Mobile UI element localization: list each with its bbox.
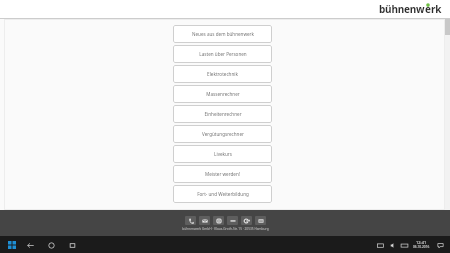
staticText: Massenrechner xyxy=(206,91,240,97)
staticText: Livekurs xyxy=(214,151,232,157)
staticText: bühnenwerk GmbH · Klaus-Groth-Str. 15 · … xyxy=(182,227,269,231)
button[interactable]: Elektrotechnik xyxy=(173,65,272,83)
staticText: Neues aus dem bühnenwerk xyxy=(192,31,254,37)
button[interactable]: Back xyxy=(24,239,36,251)
button[interactable]: Website xyxy=(213,216,224,225)
button[interactable]: Einheitenrechner xyxy=(173,105,272,123)
staticText: 06.10.2016 xyxy=(413,245,430,249)
staticText: Fort- und Weiterbildung xyxy=(197,191,249,197)
staticText: 12:41 xyxy=(416,240,427,245)
button[interactable]: Facebook xyxy=(227,216,238,225)
staticText: e xyxy=(425,2,431,16)
button[interactable]: Call xyxy=(185,216,196,225)
button[interactable]: Email xyxy=(199,216,210,225)
button[interactable]: Meister werden! xyxy=(173,165,272,183)
button[interactable]: Neues aus dem bühnenwerk xyxy=(173,25,272,43)
staticText: bühnenw xyxy=(379,2,425,16)
button[interactable]: 12:41 xyxy=(413,236,430,253)
button[interactable]: Livekurs xyxy=(173,145,272,163)
staticText: Vergütungsrechner xyxy=(202,131,244,137)
staticText: Lasten über Personen xyxy=(199,51,247,57)
staticText: Einheitenrechner xyxy=(204,111,242,117)
button[interactable]: Task view xyxy=(66,239,78,251)
button[interactable]: Share xyxy=(255,216,266,225)
button[interactable]: Search xyxy=(45,239,57,251)
button[interactable]: Keyboard xyxy=(398,239,410,251)
button[interactable]: Notifications xyxy=(434,239,446,251)
staticText: rk xyxy=(431,2,442,16)
button[interactable]: Display xyxy=(374,239,386,251)
staticText: Elektrotechnik xyxy=(207,71,238,77)
button[interactable]: Massenrechner xyxy=(173,85,272,103)
button[interactable]: Vergütungsrechner xyxy=(173,125,272,143)
button[interactable]: Volume xyxy=(386,239,398,251)
button[interactable]: Google Plus xyxy=(241,216,252,225)
button[interactable]: Lasten über Personen xyxy=(173,45,272,63)
staticText: Meister werden! xyxy=(205,171,240,177)
button[interactable]: Start xyxy=(0,236,24,253)
button[interactable]: Fort- und Weiterbildung xyxy=(173,185,272,203)
